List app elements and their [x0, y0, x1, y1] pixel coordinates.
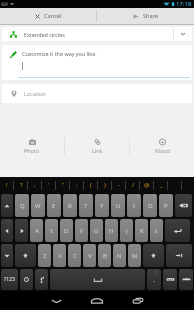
staticText: ? [20, 181, 23, 189]
staticText: 5 [89, 194, 92, 199]
staticText: D [64, 227, 69, 235]
button[interactable]: U [111, 194, 125, 217]
button[interactable]: Back [41, 291, 71, 310]
staticText: 6 [105, 194, 108, 199]
staticText: Cancel [44, 12, 62, 20]
button[interactable]: Photo [0, 134, 64, 158]
button[interactable]: T [79, 194, 93, 217]
button[interactable]: : [70, 177, 84, 193]
staticText: ) [104, 181, 106, 189]
button[interactable]: ?123 [1, 269, 18, 290]
button[interactable]: Share [97, 8, 194, 24]
staticText: Customize it the way you like. [22, 50, 97, 57]
staticText: O [148, 202, 153, 210]
button[interactable]: ? [14, 177, 28, 193]
button[interactable]: " [56, 177, 70, 193]
staticText: Extended circles [24, 31, 65, 38]
button[interactable]: ) [98, 177, 112, 193]
button[interactable]: N [113, 244, 126, 267]
button[interactable]: Right [15, 219, 28, 242]
button[interactable]: Voice input [35, 269, 48, 290]
button[interactable]: ( [84, 177, 98, 193]
button[interactable]: Recents [123, 291, 153, 310]
staticText: Location [24, 90, 46, 97]
staticText: ' [48, 181, 50, 189]
button[interactable]: Tab [166, 244, 192, 267]
button[interactable]: F [75, 219, 88, 242]
staticText: " [62, 181, 65, 189]
staticText: P [164, 202, 168, 210]
button[interactable]: W [31, 194, 45, 217]
button[interactable]: Hide keyboard [179, 269, 193, 290]
staticText: . [153, 275, 155, 285]
staticText: W [35, 202, 41, 210]
staticText: V [88, 252, 92, 260]
button[interactable]: Shift [143, 244, 164, 267]
button[interactable]: Customize it the way you like. [2, 45, 192, 80]
button[interactable]: L [150, 219, 163, 242]
staticText: 17:18 [176, 0, 192, 8]
button[interactable]: H [105, 219, 118, 242]
staticText: 2 [41, 194, 44, 199]
staticText: R [68, 202, 72, 210]
button[interactable]: , [28, 177, 42, 193]
button[interactable]: K [135, 219, 148, 242]
button[interactable]: Previous [1, 194, 13, 217]
button[interactable]: Backspace [175, 194, 192, 217]
staticText: _ [160, 181, 163, 189]
button[interactable]: E [47, 194, 61, 217]
button[interactable]: Location [2, 84, 192, 103]
staticText: 1 [25, 194, 28, 199]
staticText: G [94, 227, 99, 235]
button[interactable]: V [83, 244, 96, 267]
button[interactable]: Home [82, 291, 112, 310]
button[interactable]: Mood [130, 134, 194, 158]
button[interactable]: O [143, 194, 157, 217]
button[interactable]: ' [42, 177, 56, 193]
button[interactable]: X [53, 244, 66, 267]
button[interactable]: G [90, 219, 103, 242]
button[interactable]: Change audience [173, 27, 192, 41]
staticText: J [126, 227, 128, 235]
staticText: N [117, 252, 122, 260]
button[interactable]: . [147, 269, 161, 290]
button[interactable]: R [63, 194, 77, 217]
button[interactable]: - [112, 177, 126, 193]
staticText: / [132, 181, 135, 189]
button[interactable]: Down [1, 244, 13, 267]
button[interactable]: I [127, 194, 141, 217]
button[interactable]: Left [1, 219, 13, 242]
staticText: I [133, 202, 136, 210]
button[interactable]: Y [95, 194, 109, 217]
button[interactable]: B [98, 244, 111, 267]
button[interactable]: Emoji [20, 269, 33, 290]
button[interactable]: Space [50, 269, 145, 290]
button[interactable]: D [60, 219, 73, 242]
button[interactable]: S [45, 219, 58, 242]
button[interactable]: @ [140, 177, 154, 193]
button[interactable]: Extended circles [2, 27, 192, 41]
button[interactable]: Z [38, 244, 51, 267]
button[interactable]: P [159, 194, 173, 217]
button[interactable]: Cancel [0, 8, 96, 24]
staticText: L [155, 227, 159, 235]
button[interactable]: Enter [165, 219, 190, 242]
button[interactable]: _ [154, 177, 168, 193]
staticText: 4 [73, 194, 76, 199]
staticText: 9 [153, 194, 156, 199]
staticText: ( [90, 181, 92, 189]
button[interactable]: A [30, 219, 43, 242]
button[interactable]: C [68, 244, 81, 267]
button[interactable]: ! [0, 177, 14, 193]
button[interactable]: Q [15, 194, 29, 217]
button[interactable]: / [126, 177, 140, 193]
staticText: F [80, 227, 84, 235]
button[interactable]: M [128, 244, 141, 267]
button[interactable]: Link [65, 134, 129, 158]
staticText: 8 [137, 194, 140, 199]
button[interactable]: J [120, 219, 133, 242]
button[interactable]: Switch keyboard [163, 269, 177, 290]
staticText: ! [156, 270, 158, 275]
button[interactable]: Shift [15, 244, 36, 267]
staticText: Z [43, 252, 47, 260]
